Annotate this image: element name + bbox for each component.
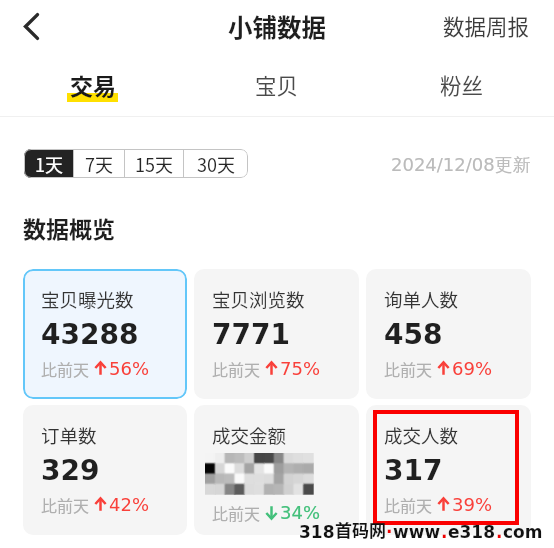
staticText: 458 — [384, 318, 443, 351]
staticText: com — [503, 522, 543, 542]
staticText: 317 — [384, 454, 443, 487]
staticText: 订单数 — [41, 422, 97, 449]
button[interactable]: 数据周报 — [443, 10, 530, 41]
staticText: 34% — [280, 502, 321, 523]
staticText: 329 — [41, 454, 100, 487]
button[interactable]: 30天 — [184, 149, 248, 178]
staticText: . — [441, 522, 448, 542]
button[interactable]: 询单人数 — [366, 269, 531, 399]
staticText: 小铺数据 — [228, 9, 326, 44]
button[interactable]: 成交金额 — [194, 405, 359, 535]
button[interactable]: 订单数 — [23, 405, 187, 535]
staticText: 首码网 — [335, 517, 386, 542]
staticText: 1天 — [35, 151, 63, 177]
staticText: 数据概览 — [23, 211, 115, 244]
staticText: . — [496, 522, 503, 542]
staticText: 询单人数 — [384, 286, 459, 313]
button[interactable]: Back — [8, 3, 54, 49]
staticText: 宝贝 — [255, 69, 299, 100]
button[interactable]: 15天 — [125, 149, 183, 178]
button[interactable]: 宝贝 — [184, 57, 369, 116]
staticText: 粉丝 — [440, 69, 484, 100]
staticText: 7771 — [212, 318, 290, 351]
button[interactable]: 7天 — [74, 149, 124, 178]
staticText: 比前天 — [212, 357, 261, 380]
staticText: 比前天 — [384, 357, 433, 380]
button[interactable]: 宝贝浏览数 — [194, 269, 359, 399]
staticText: 比前天 — [212, 501, 261, 524]
staticText: 交易 — [70, 68, 116, 101]
staticText: 成交金额 — [212, 422, 287, 449]
staticText: 比前天 — [384, 493, 433, 516]
staticText: 43288 — [41, 318, 139, 351]
staticText: 宝贝浏览数 — [212, 286, 305, 313]
staticText: 318 — [299, 522, 335, 542]
staticText: 30天 — [197, 151, 235, 177]
button[interactable]: 宝贝曝光数 — [23, 269, 187, 399]
button[interactable]: 交易 — [0, 57, 184, 116]
staticText: 比前天 — [41, 493, 90, 516]
button[interactable]: 成交人数 — [366, 405, 531, 535]
staticText: 39% — [452, 494, 493, 515]
staticText: 成交人数 — [384, 422, 459, 449]
staticText: 数据周报 — [443, 10, 530, 41]
staticText: 56% — [109, 358, 150, 379]
staticText: 42% — [109, 494, 150, 515]
staticText: 7天 — [85, 151, 113, 177]
staticText: e318 — [448, 522, 496, 542]
staticText: 69% — [452, 358, 493, 379]
staticText: 15天 — [135, 151, 173, 177]
button[interactable]: 1天 — [24, 149, 73, 178]
staticText: 宝贝曝光数 — [41, 286, 134, 313]
staticText: 比前天 — [41, 357, 90, 380]
staticText: 2024/12/08更新 — [391, 154, 531, 177]
staticText: www — [393, 522, 441, 542]
staticText: · — [386, 522, 393, 542]
button[interactable]: 粉丝 — [369, 57, 554, 116]
staticText: 75% — [280, 358, 321, 379]
